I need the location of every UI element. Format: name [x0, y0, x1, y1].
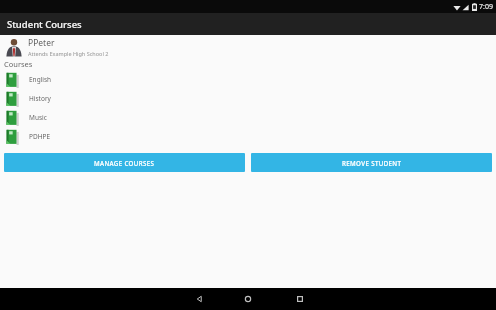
staticText: PDHPE	[29, 132, 51, 141]
staticText: 7:09	[479, 2, 493, 12]
button[interactable]: REMOVE STUDENT	[251, 153, 492, 172]
button[interactable]: History	[0, 89, 496, 108]
button[interactable]: PDHPE	[0, 127, 496, 146]
button[interactable]: Back	[191, 291, 207, 307]
staticText: Music	[29, 113, 47, 122]
button[interactable]: English	[0, 70, 496, 89]
button[interactable]: MANAGE COURSES	[4, 153, 245, 172]
staticText: REMOVE STUDENT	[342, 159, 402, 167]
button[interactable]: Recent apps	[292, 291, 308, 307]
staticText: PPeter	[28, 37, 55, 49]
staticText: Student Courses	[7, 18, 82, 31]
staticText: English	[29, 75, 52, 84]
staticText: History	[29, 94, 51, 103]
button[interactable]: Music	[0, 108, 496, 127]
button[interactable]: Home	[240, 291, 256, 307]
button[interactable]: PPeter	[0, 35, 496, 59]
staticText: Attends Example High School 2	[28, 50, 109, 57]
staticText: Courses	[4, 59, 33, 69]
staticText: MANAGE COURSES	[94, 159, 155, 167]
